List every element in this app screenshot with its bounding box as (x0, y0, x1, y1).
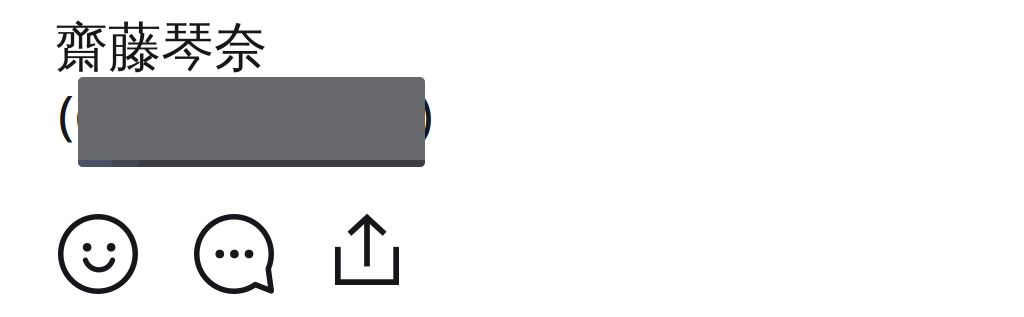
staticText: (@kotonasaito) (58, 78, 433, 149)
button[interactable]: 齋藤琴奈 (55, 15, 267, 80)
button[interactable]: Comment (194, 214, 274, 294)
button[interactable]: (@kotonasaito) (58, 78, 433, 149)
button[interactable]: React (58, 214, 138, 294)
button[interactable]: Share (335, 215, 399, 285)
staticText: 齋藤琴奈 (55, 15, 267, 80)
